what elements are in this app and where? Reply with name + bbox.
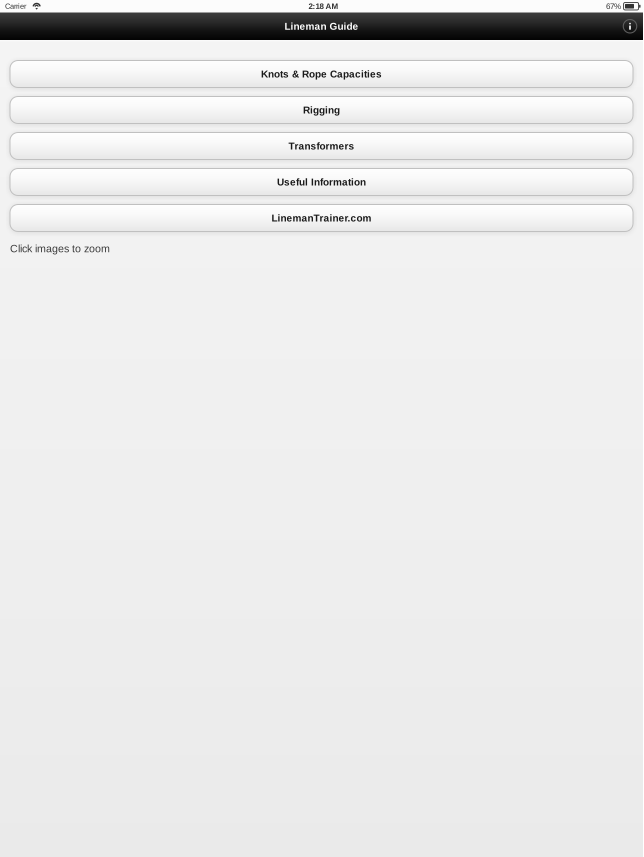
- button[interactable]: LinemanTrainer.com: [10, 204, 633, 231]
- staticText: Carrier: [5, 2, 26, 10]
- staticText: Transformers: [288, 140, 354, 152]
- staticText: LinemanTrainer.com: [271, 212, 371, 224]
- staticText: 2:18 AM: [308, 2, 338, 11]
- button[interactable]: Rigging: [10, 96, 633, 123]
- button[interactable]: Knots & Rope Capacities: [10, 60, 633, 87]
- staticText: Lineman Guide: [284, 21, 358, 32]
- staticText: Rigging: [303, 104, 340, 116]
- staticText: 67%: [606, 2, 621, 11]
- staticText: Knots & Rope Capacities: [261, 68, 382, 80]
- button[interactable]: Useful Information: [10, 168, 633, 195]
- button[interactable]: Transformers: [10, 132, 633, 159]
- button[interactable]: Info: [619, 15, 641, 37]
- staticText: Useful Information: [277, 176, 366, 188]
- staticText: Click images to zoom: [10, 242, 110, 254]
